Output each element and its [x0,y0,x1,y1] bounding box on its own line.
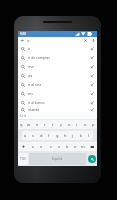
button[interactable]: p [89,120,97,129]
staticText: s [32,133,34,138]
staticText: d [40,133,43,138]
button[interactable]: ir al banco [18,98,97,107]
staticText: 9:30 [20,32,26,36]
button[interactable]: s [29,131,37,140]
staticText: k [80,133,83,138]
staticText: b [66,144,69,149]
button[interactable]: Clear query [81,37,89,44]
button[interactable]: Back [18,37,27,44]
staticText: n [74,144,77,149]
button[interactable]: iris [18,89,97,98]
staticText: r [44,122,46,127]
button[interactable]: irlanda [18,107,97,112]
button[interactable]: Voice search [89,37,97,44]
button[interactable]: j [69,131,77,140]
button[interactable]: b [63,142,71,151]
staticText: ir al cine [28,82,42,87]
button[interactable]: q [18,120,25,129]
button[interactable]: Search [88,155,96,163]
button[interactable]: Insert suggestion [88,80,97,89]
button[interactable]: ir de compras [18,53,97,62]
button[interactable]: c [46,142,55,151]
button[interactable]: Insert suggestion [88,98,97,107]
button[interactable]: n [71,142,79,151]
staticText: a [24,133,27,138]
staticText: m [81,144,85,149]
button[interactable]: v [55,142,63,151]
button[interactable]: a [22,131,29,140]
button[interactable]: Backspace [87,142,97,151]
button[interactable]: i [73,120,81,129]
button[interactable]: Insert suggestion [88,53,97,62]
staticText: l [88,133,90,138]
staticText: u [68,122,71,127]
button[interactable]: Insert suggestion [88,44,97,53]
button[interactable]: w [25,120,33,129]
button[interactable]: y [57,120,65,129]
button[interactable]: Keyboard settings [18,112,24,119]
button[interactable]: d [37,131,45,140]
button[interactable]: Shift [18,142,28,151]
staticText: ?123 [20,157,26,161]
staticText: i [76,122,78,127]
button[interactable]: e [33,120,41,129]
staticText: ir [27,38,30,43]
staticText: q [20,122,23,127]
staticText: v [58,144,61,149]
staticText: p [92,122,95,127]
staticText: c [50,144,52,149]
staticText: ir [28,46,31,51]
button[interactable]: z [28,142,37,151]
button[interactable]: ir al cine [18,80,97,89]
staticText: ir al banco [28,100,45,105]
button[interactable]: o [81,120,89,129]
button[interactable]: h [61,131,69,140]
button[interactable]: ir [18,44,97,53]
button[interactable]: x [37,142,46,151]
button[interactable]: ?123 [18,153,28,165]
staticText: e [36,122,39,127]
staticText: x [40,144,43,149]
button[interactable]: irse [18,62,97,71]
button[interactable]: Insert suggestion [88,71,97,80]
staticText: h [64,133,67,138]
button[interactable]: Insert suggestion [88,62,97,71]
staticText: f [48,133,50,138]
staticText: y [60,122,63,127]
button[interactable]: l [85,131,93,140]
button[interactable]: k [77,131,85,140]
staticText: o [84,122,87,127]
staticText: z [32,144,34,149]
button[interactable]: t [49,120,57,129]
staticText: t [52,122,54,127]
staticText: ir de compras [28,55,50,60]
staticText: irlanda [28,107,40,112]
staticText: j [72,133,74,138]
button[interactable]: g [53,131,61,140]
button[interactable]: r [41,120,49,129]
staticText: irse [28,64,34,69]
button[interactable]: Insert suggestion [88,89,97,98]
button[interactable]: u [65,120,73,129]
button[interactable]: ira [18,71,97,80]
staticText: ir [24,114,27,118]
staticText: w [27,122,31,127]
button[interactable]: m [79,142,87,151]
button[interactable]: Insert suggestion [88,107,97,112]
staticText: ira [28,73,33,78]
staticText: Español [52,157,63,161]
button[interactable]: Español [29,153,86,165]
staticText: iris [28,91,33,96]
staticText: g [56,133,59,138]
button[interactable]: f [45,131,53,140]
